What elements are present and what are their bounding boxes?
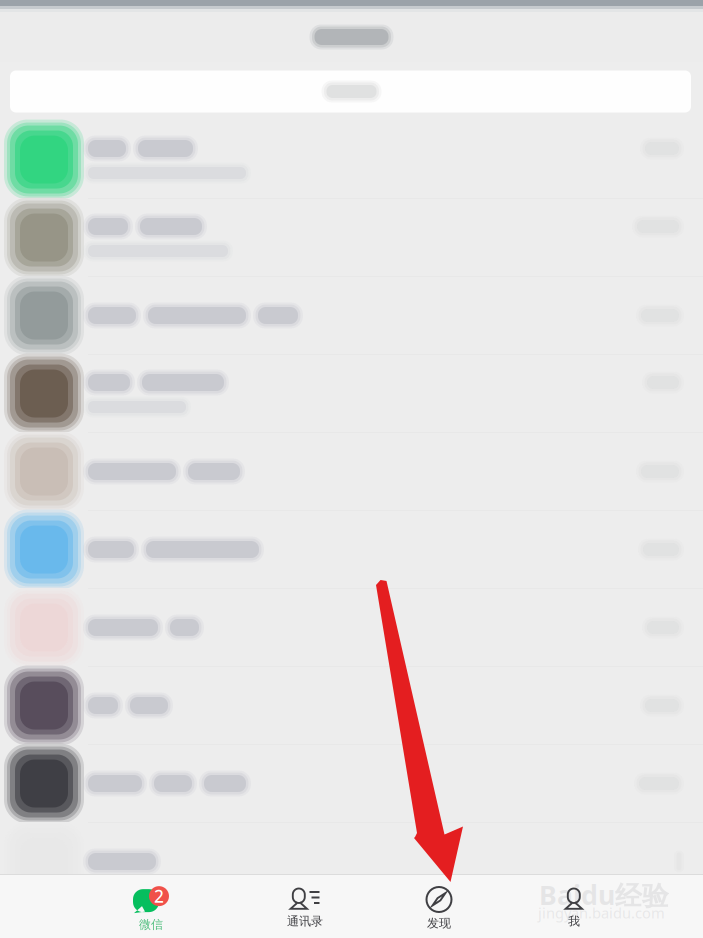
staticText: 发现 (427, 916, 451, 931)
staticText: 微信 (139, 917, 163, 932)
button[interactable] (0, 199, 703, 277)
staticText: jingyan.baidu.com (538, 903, 665, 922)
button[interactable]: 通讯录 (265, 875, 345, 938)
button[interactable] (0, 589, 703, 667)
button[interactable] (0, 667, 703, 745)
button[interactable]: 2 (111, 875, 191, 938)
staticText: Baidu经验 (539, 877, 669, 913)
button[interactable] (0, 823, 703, 901)
button[interactable] (0, 745, 703, 823)
button[interactable] (0, 511, 703, 589)
staticText: 我 (568, 914, 580, 929)
button[interactable]: 发现 (399, 875, 479, 938)
button[interactable] (0, 277, 703, 355)
button[interactable] (0, 121, 703, 199)
staticText: 通讯录 (287, 914, 323, 929)
button[interactable] (0, 355, 703, 433)
button[interactable]: 我 (534, 875, 614, 938)
button[interactable] (0, 433, 703, 511)
staticText: 2 (154, 885, 164, 908)
